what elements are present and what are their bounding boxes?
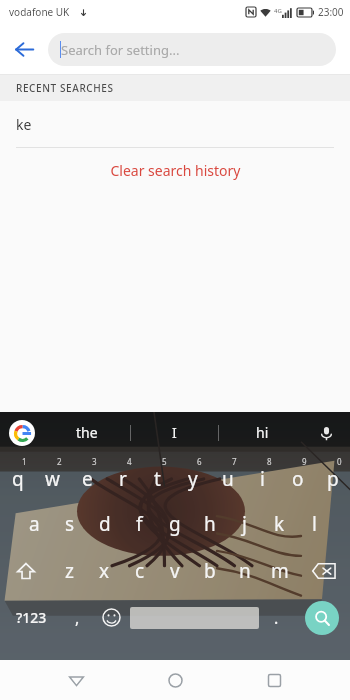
button[interactable]: f bbox=[122, 500, 157, 547]
staticText: 0 bbox=[337, 456, 342, 467]
button[interactable]: g bbox=[157, 500, 192, 547]
button[interactable]: Back bbox=[0, 25, 48, 73]
staticText: x bbox=[99, 558, 110, 584]
staticText: 4G bbox=[274, 7, 282, 15]
staticText: d bbox=[99, 511, 111, 537]
staticText: RECENT SEARCHES bbox=[16, 81, 114, 95]
staticText: c bbox=[135, 558, 145, 584]
button[interactable]: Search bbox=[293, 594, 350, 641]
button[interactable]: 3 bbox=[70, 453, 105, 500]
button[interactable]: m bbox=[262, 547, 297, 594]
button[interactable]: h bbox=[192, 500, 227, 547]
staticText: 6 bbox=[197, 456, 202, 467]
button[interactable]: Emoji bbox=[92, 594, 130, 641]
staticText: Clear search history bbox=[110, 161, 241, 180]
button[interactable]: Shift bbox=[0, 547, 52, 594]
staticText: ?123 bbox=[16, 608, 47, 627]
staticText: s bbox=[65, 511, 75, 537]
staticText: 4 bbox=[127, 456, 132, 467]
staticText: o bbox=[292, 466, 304, 492]
button[interactable]: Back bbox=[53, 660, 99, 700]
staticText: hi bbox=[256, 423, 269, 442]
button[interactable]: b bbox=[192, 547, 227, 594]
staticText: p bbox=[327, 466, 339, 492]
staticText: Search for setting... bbox=[61, 41, 180, 59]
button[interactable]: Backspace bbox=[297, 547, 350, 594]
staticText: 7 bbox=[232, 456, 237, 467]
button[interactable]: , bbox=[62, 594, 92, 641]
staticText: a bbox=[29, 511, 40, 537]
staticText: 3 bbox=[92, 456, 97, 467]
button[interactable]: 7 bbox=[210, 453, 245, 500]
staticText: y bbox=[188, 466, 198, 492]
staticText: r bbox=[119, 466, 127, 492]
button[interactable]: I bbox=[131, 412, 218, 453]
button[interactable]: hi bbox=[219, 412, 306, 453]
button[interactable]: Space bbox=[130, 607, 259, 629]
staticText: q bbox=[12, 466, 24, 492]
button[interactable]: a bbox=[17, 500, 52, 547]
button[interactable]: c bbox=[122, 547, 157, 594]
staticText: k bbox=[274, 511, 285, 537]
button[interactable]: d bbox=[87, 500, 122, 547]
staticText: h bbox=[204, 511, 216, 537]
button[interactable]: 4 bbox=[105, 453, 140, 500]
staticText: I bbox=[172, 423, 177, 442]
button[interactable]: the bbox=[44, 412, 130, 453]
button[interactable]: ke bbox=[0, 101, 350, 147]
button[interactable]: n bbox=[227, 547, 262, 594]
staticText: 5 bbox=[162, 456, 167, 467]
staticText: 8 bbox=[267, 456, 272, 467]
button[interactable]: k bbox=[262, 500, 297, 547]
button[interactable]: 0 bbox=[315, 453, 350, 500]
button[interactable]: Search for setting... bbox=[48, 33, 336, 66]
button[interactable]: s bbox=[52, 500, 87, 547]
button[interactable]: Recent apps bbox=[251, 660, 297, 700]
button[interactable]: Home bbox=[152, 660, 198, 700]
button[interactable]: x bbox=[87, 547, 122, 594]
button[interactable]: Google bbox=[9, 420, 35, 446]
button[interactable]: 9 bbox=[280, 453, 315, 500]
button[interactable]: l bbox=[297, 500, 332, 547]
staticText: e bbox=[82, 466, 93, 492]
button[interactable]: z bbox=[52, 547, 87, 594]
staticText: f bbox=[136, 511, 143, 537]
staticText: 23:00 bbox=[318, 5, 344, 19]
button[interactable]: v bbox=[157, 547, 192, 594]
button[interactable]: ?123 bbox=[0, 594, 62, 641]
staticText: . bbox=[274, 607, 279, 629]
staticText: g bbox=[169, 511, 181, 537]
staticText: t bbox=[154, 466, 161, 492]
staticText: i bbox=[260, 466, 265, 492]
staticText: j bbox=[242, 511, 247, 537]
staticText: 9 bbox=[302, 456, 307, 467]
staticText: , bbox=[75, 607, 80, 629]
staticText: b bbox=[204, 558, 216, 584]
staticText: l bbox=[312, 511, 317, 537]
staticText: 1 bbox=[22, 456, 27, 467]
button[interactable]: j bbox=[227, 500, 262, 547]
staticText: n bbox=[239, 558, 251, 584]
button[interactable]: 8 bbox=[245, 453, 280, 500]
staticText: vodafone UK bbox=[9, 5, 70, 19]
staticText: m bbox=[271, 558, 289, 584]
staticText: u bbox=[222, 466, 234, 492]
staticText: z bbox=[65, 558, 74, 584]
staticText: v bbox=[170, 558, 180, 584]
button[interactable]: 2 bbox=[35, 453, 70, 500]
button[interactable]: 5 bbox=[140, 453, 175, 500]
staticText: the bbox=[76, 423, 98, 442]
button[interactable]: 6 bbox=[175, 453, 210, 500]
button[interactable]: . bbox=[259, 594, 293, 641]
button[interactable]: 1 bbox=[0, 453, 35, 500]
staticText: w bbox=[45, 466, 60, 492]
staticText: ke bbox=[16, 115, 32, 134]
button[interactable]: Voice input bbox=[312, 419, 340, 447]
staticText: 2 bbox=[57, 456, 62, 467]
button[interactable]: Clear search history bbox=[0, 148, 350, 192]
